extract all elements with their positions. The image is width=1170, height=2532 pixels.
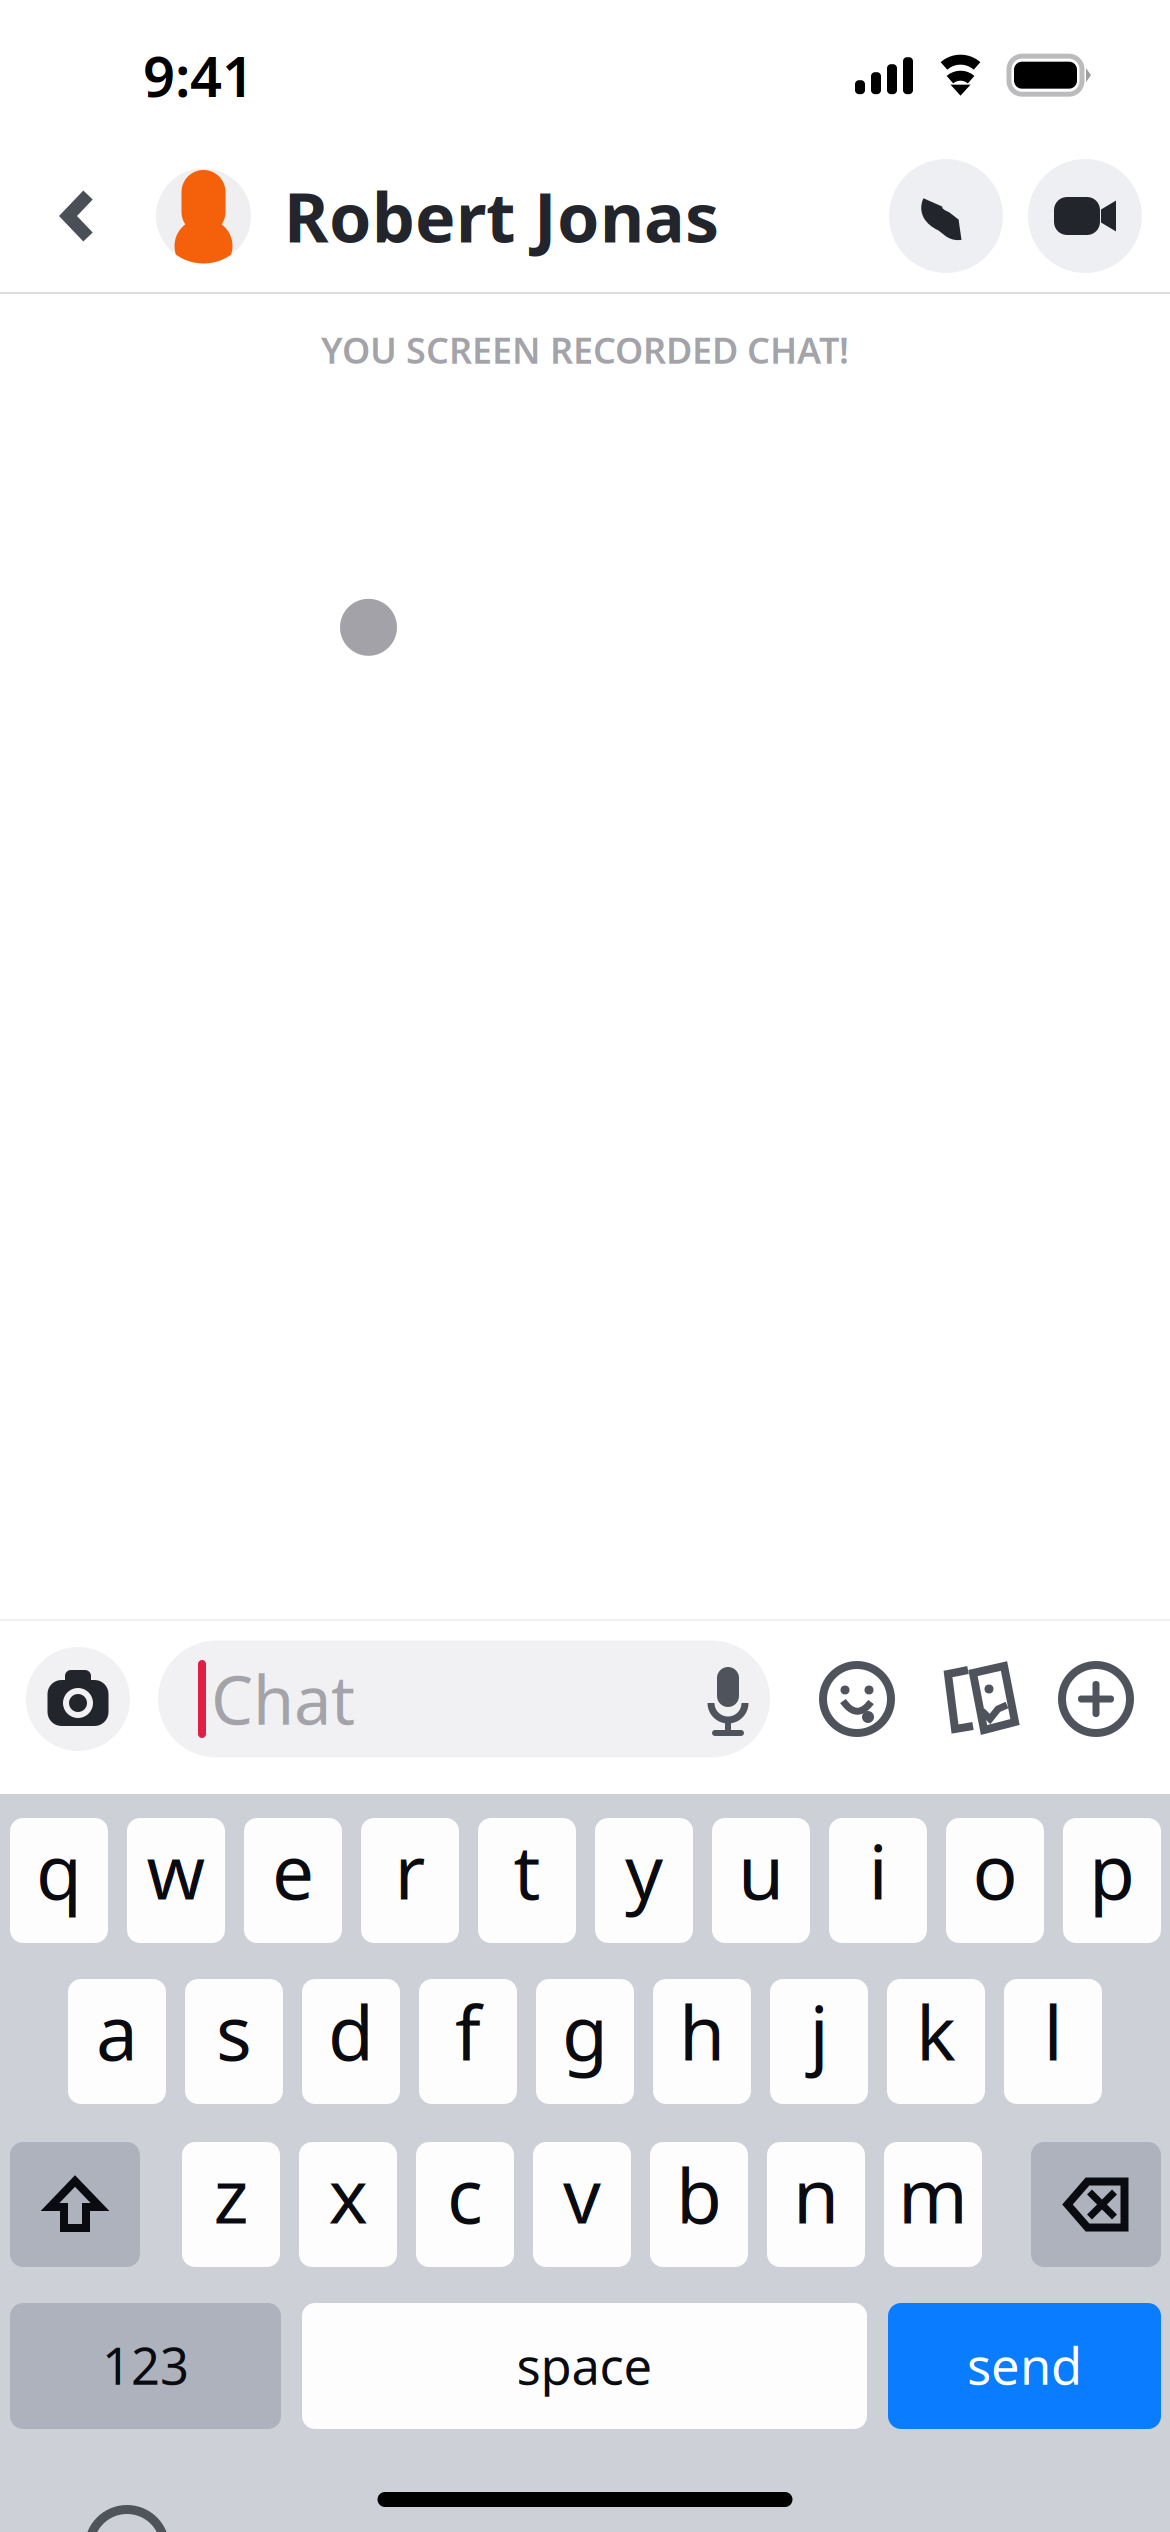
button[interactable]: q bbox=[10, 1818, 108, 1943]
button[interactable]: Delete bbox=[1031, 2142, 1161, 2267]
button[interactable]: m bbox=[884, 2142, 982, 2267]
staticText: f bbox=[455, 1982, 481, 2081]
button[interactable]: 123 bbox=[10, 2303, 281, 2429]
button[interactable]: Stickers bbox=[937, 1640, 1021, 1757]
staticText: l bbox=[1043, 1982, 1062, 2081]
staticText: m bbox=[898, 2145, 968, 2244]
staticText: Robert Jonas bbox=[284, 171, 719, 261]
button[interactable]: d bbox=[302, 1979, 400, 2104]
button[interactable]: v bbox=[533, 2142, 631, 2267]
staticText: z bbox=[213, 2145, 248, 2244]
staticText: w bbox=[146, 1821, 205, 1920]
button[interactable]: f bbox=[419, 1979, 517, 2104]
staticText: space bbox=[516, 2331, 652, 2399]
staticText: e bbox=[272, 1821, 314, 1920]
staticText: s bbox=[216, 1982, 252, 2081]
staticText: y bbox=[625, 1821, 663, 1920]
staticText: r bbox=[394, 1821, 425, 1920]
staticText: a bbox=[96, 1982, 138, 2081]
button[interactable]: More bbox=[1054, 1640, 1138, 1757]
button[interactable]: z bbox=[182, 2142, 280, 2267]
staticText: i bbox=[868, 1821, 887, 1920]
button[interactable]: Emoji bbox=[815, 1640, 899, 1757]
button[interactable]: Back bbox=[0, 140, 95, 292]
staticText: Chat bbox=[211, 1655, 355, 1743]
button[interactable]: w bbox=[127, 1818, 225, 1943]
button[interactable]: i bbox=[829, 1818, 927, 1943]
staticText: j bbox=[809, 1982, 828, 2081]
staticText: h bbox=[679, 1982, 725, 2081]
button[interactable]: j bbox=[770, 1979, 868, 2104]
button[interactable]: l bbox=[1004, 1979, 1102, 2104]
staticText: b bbox=[676, 2145, 722, 2244]
button[interactable]: e bbox=[244, 1818, 342, 1943]
button[interactable]: p bbox=[1063, 1818, 1161, 1943]
staticText: 9:41 bbox=[143, 38, 254, 112]
button[interactable]: x bbox=[299, 2142, 397, 2267]
staticText: c bbox=[447, 2145, 483, 2244]
staticText: p bbox=[1089, 1821, 1135, 1920]
staticText: YOU SCREEN RECORDED CHAT! bbox=[321, 326, 849, 374]
button[interactable]: space bbox=[302, 2303, 867, 2429]
staticText: send bbox=[967, 2331, 1082, 2399]
staticText: u bbox=[738, 1821, 784, 1920]
button[interactable]: a bbox=[68, 1979, 166, 2104]
button[interactable]: Shift bbox=[10, 2142, 140, 2267]
button[interactable]: Chat bbox=[158, 1640, 770, 1757]
staticText: 123 bbox=[102, 2331, 189, 2399]
staticText: x bbox=[328, 2145, 367, 2244]
button[interactable]: c bbox=[416, 2142, 514, 2267]
button[interactable]: u bbox=[712, 1818, 810, 1943]
staticText: t bbox=[513, 1821, 540, 1920]
staticText: v bbox=[563, 2145, 601, 2244]
button[interactable]: k bbox=[887, 1979, 985, 2104]
button[interactable]: y bbox=[595, 1818, 693, 1943]
button[interactable]: h bbox=[653, 1979, 751, 2104]
button[interactable]: Robert Jonas bbox=[156, 140, 719, 292]
staticText: q bbox=[36, 1821, 82, 1920]
button[interactable]: r bbox=[361, 1818, 459, 1943]
button[interactable]: t bbox=[478, 1818, 576, 1943]
button[interactable]: n bbox=[767, 2142, 865, 2267]
staticText: g bbox=[562, 1982, 608, 2081]
staticText: n bbox=[793, 2145, 839, 2244]
button[interactable]: send bbox=[888, 2303, 1161, 2429]
staticText: d bbox=[328, 1982, 374, 2081]
button[interactable]: Video call bbox=[1028, 159, 1142, 273]
button[interactable]: Camera bbox=[26, 1647, 130, 1751]
staticText: o bbox=[972, 1821, 1017, 1920]
staticText: k bbox=[916, 1982, 956, 2081]
button[interactable]: b bbox=[650, 2142, 748, 2267]
button[interactable]: o bbox=[946, 1818, 1044, 1943]
button[interactable]: s bbox=[185, 1979, 283, 2104]
button[interactable]: Audio call bbox=[889, 159, 1003, 273]
button[interactable]: g bbox=[536, 1979, 634, 2104]
